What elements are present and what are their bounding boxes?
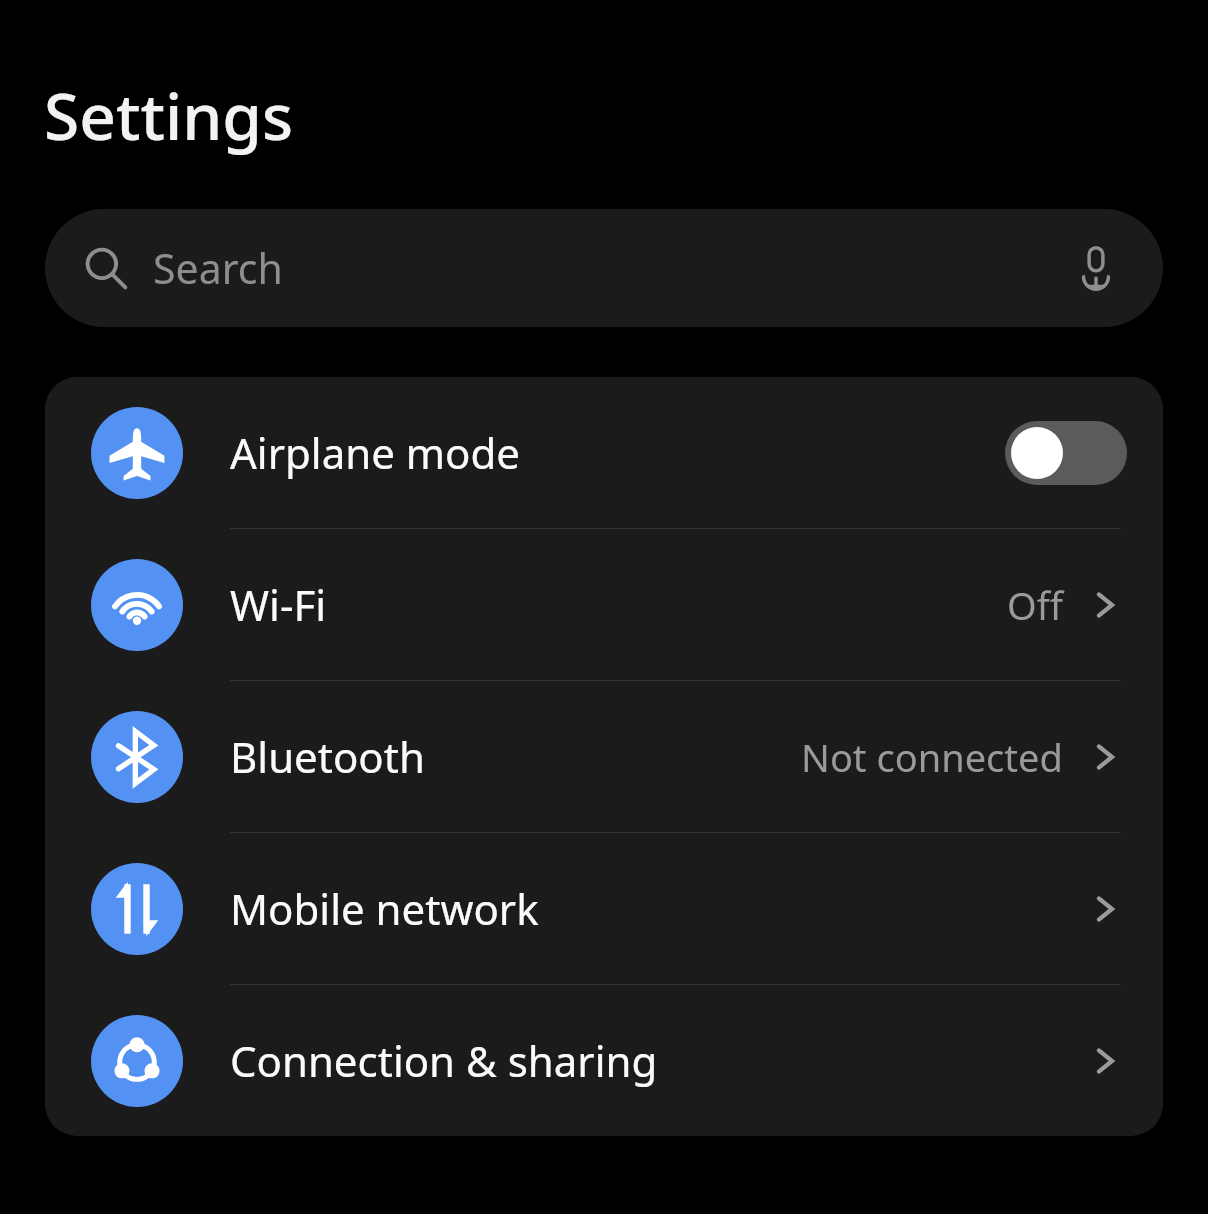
button[interactable]: Search bbox=[45, 209, 1163, 327]
staticText: Airplane mode bbox=[230, 424, 521, 481]
button[interactable]: Wi-Fi bbox=[45, 529, 1163, 681]
staticText: Connection & sharing bbox=[230, 1032, 658, 1089]
button[interactable]: Voice search bbox=[1067, 239, 1125, 297]
staticText: Settings bbox=[44, 72, 294, 159]
staticText: Bluetooth bbox=[230, 728, 425, 785]
staticText: Mobile network bbox=[230, 880, 539, 937]
button[interactable]: Airplane mode toggle bbox=[1005, 421, 1127, 485]
staticText: Off bbox=[1007, 579, 1063, 631]
staticText: Search bbox=[153, 240, 283, 296]
button[interactable]: Bluetooth bbox=[45, 681, 1163, 833]
button[interactable]: Mobile network bbox=[45, 833, 1163, 985]
button[interactable]: Connection & sharing bbox=[45, 985, 1163, 1136]
staticText: Wi-Fi bbox=[230, 576, 327, 633]
staticText: Not connected bbox=[801, 731, 1063, 783]
button[interactable]: Airplane mode bbox=[45, 377, 1163, 529]
